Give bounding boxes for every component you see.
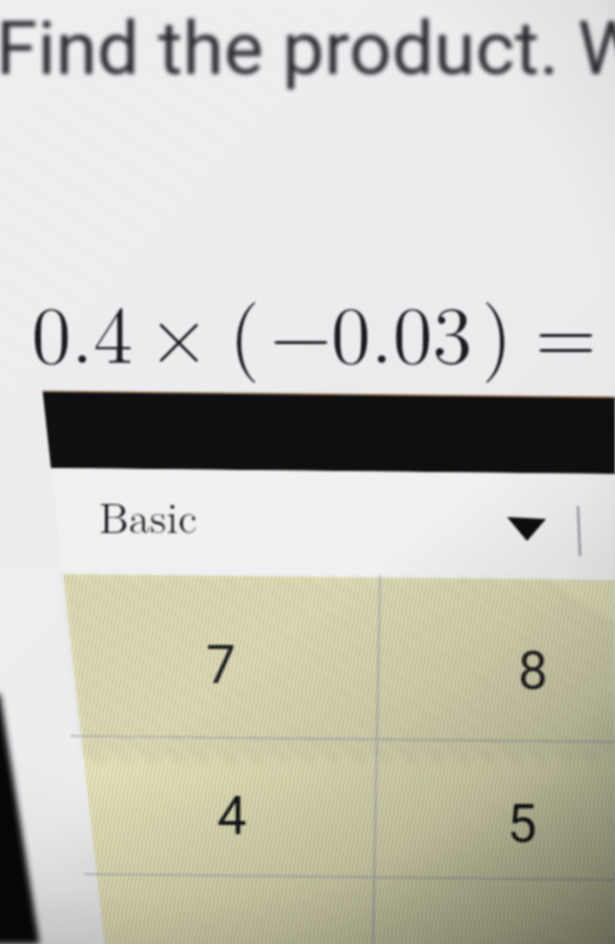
button[interactable]: Maths question with on-screen calculator (0, 0, 615, 944)
